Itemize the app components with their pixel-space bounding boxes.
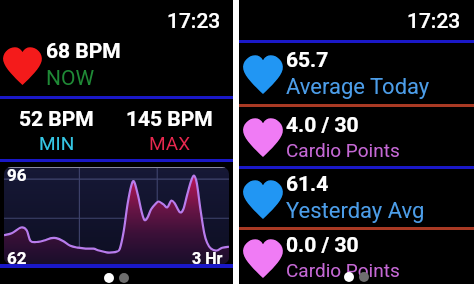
staticText: 65.7	[286, 48, 329, 73]
button[interactable]: 52 BPM	[0, 99, 113, 159]
staticText: 3 Hr	[192, 249, 223, 264]
staticText: 62	[7, 248, 27, 264]
staticText: MIN	[39, 132, 75, 154]
staticText: 61.4	[286, 172, 329, 197]
staticText: Cardio Points	[286, 139, 400, 161]
staticText: Yesterday Avg	[286, 198, 425, 224]
staticText: Cardio Points	[286, 259, 400, 281]
staticText: 0.0 / 30	[286, 233, 359, 258]
button[interactable]: 0.0 / 30	[239, 230, 474, 284]
button[interactable]: 4.0 / 30	[239, 107, 474, 166]
staticText: 52 BPM	[19, 107, 94, 132]
button[interactable]: 68 BPM	[0, 34, 233, 96]
staticText: NOW	[46, 66, 95, 91]
staticText: Average Today	[286, 74, 430, 100]
button[interactable]: 96	[4, 167, 229, 264]
staticText: MAX	[149, 132, 191, 154]
staticText: 145 BPM	[126, 107, 213, 132]
staticText: 68 BPM	[46, 39, 121, 64]
button[interactable]: 65.7	[239, 43, 474, 104]
button[interactable]: 61.4	[239, 169, 474, 227]
button[interactable]: 145 BPM	[113, 99, 226, 159]
staticText: 96	[7, 167, 27, 185]
staticText: 17:23	[407, 9, 461, 34]
staticText: 4.0 / 30	[286, 113, 359, 138]
staticText: 17:23	[167, 9, 221, 34]
